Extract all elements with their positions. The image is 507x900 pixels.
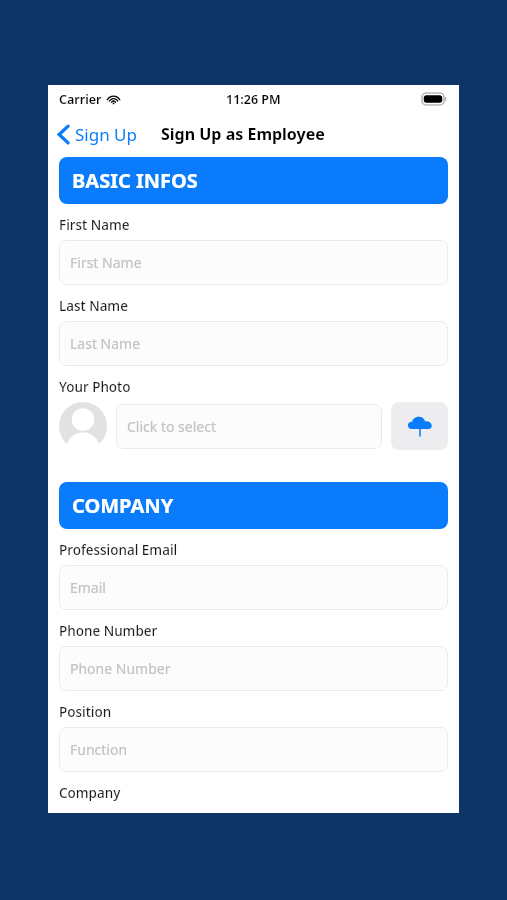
staticText: Carrier — [59, 91, 102, 108]
button[interactable]: First Name — [59, 240, 448, 285]
button[interactable]: COMPANY — [59, 482, 448, 529]
staticText: Phone Number — [70, 659, 171, 678]
staticText: COMPANY — [72, 492, 174, 519]
staticText: Click to select — [127, 417, 216, 436]
button[interactable]: Last Name — [59, 321, 448, 366]
staticText: 11:26 PM — [226, 91, 281, 108]
button[interactable]: Click to select — [116, 404, 382, 449]
button[interactable]: Function — [59, 727, 448, 772]
staticText: Last Name — [70, 334, 141, 353]
staticText: First Name — [59, 216, 130, 234]
staticText: Position — [59, 703, 112, 721]
button[interactable]: Email — [59, 565, 448, 610]
staticText: Company — [59, 784, 121, 802]
staticText: Sign Up as Employee — [161, 123, 325, 145]
staticText: Your Photo — [59, 378, 131, 396]
staticText: Email — [70, 578, 106, 597]
button[interactable]: Sign Up — [48, 119, 143, 150]
button[interactable]: BASIC INFOS — [59, 157, 448, 204]
staticText: Professional Email — [59, 541, 178, 559]
button[interactable]: Phone Number — [59, 646, 448, 691]
staticText: First Name — [70, 253, 142, 272]
staticText: Phone Number — [59, 622, 158, 640]
button[interactable]: Upload photo — [391, 402, 448, 450]
staticText: Function — [70, 740, 128, 759]
button[interactable]: Profile photo — [59, 402, 107, 450]
staticText: Sign Up — [75, 123, 137, 146]
staticText: BASIC INFOS — [72, 167, 198, 194]
staticText: Last Name — [59, 297, 128, 315]
